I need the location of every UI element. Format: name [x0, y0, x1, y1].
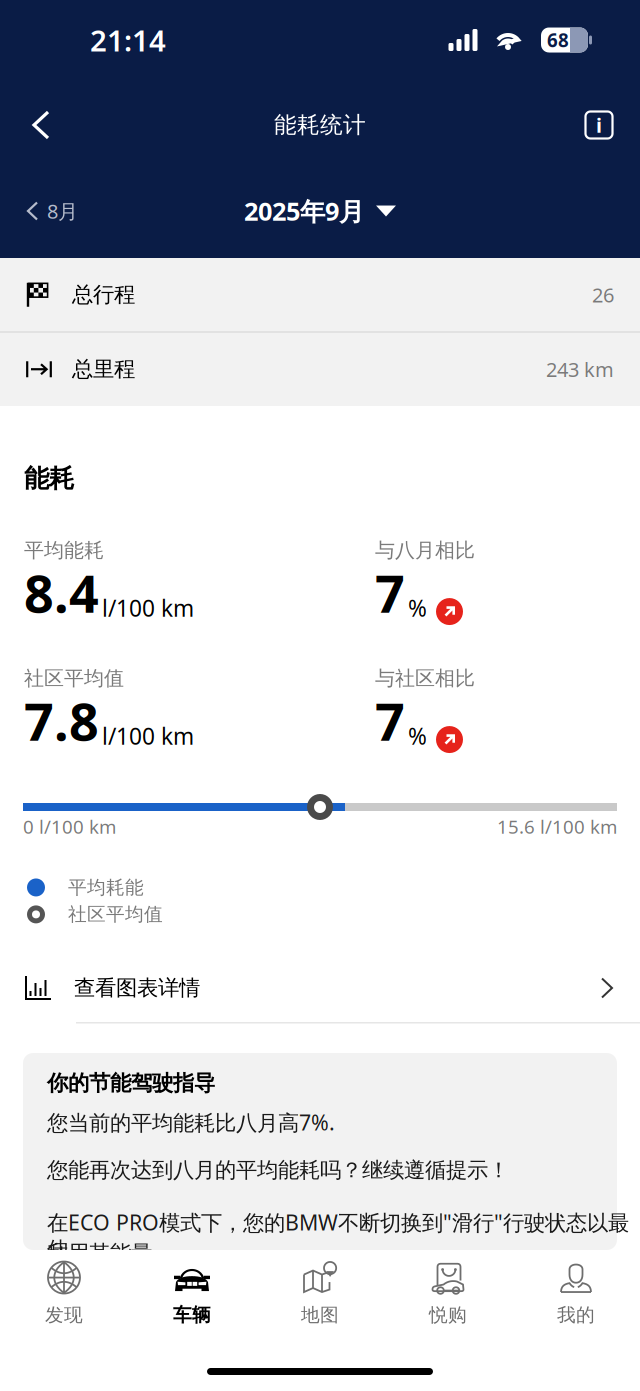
staticText: 你的节能驾驶指导 [47, 1070, 215, 1096]
staticText: 查看图表详情 [74, 975, 200, 1001]
button[interactable]: 查看图表详情 [0, 954, 640, 1023]
staticText: 7 [375, 686, 405, 755]
staticText: 与八月相比 [375, 538, 475, 563]
staticText: 能耗统计 [274, 111, 366, 139]
staticText: 2025年9月 [244, 194, 364, 228]
staticText: l/100 km [102, 721, 194, 751]
button[interactable]: 8月 [14, 186, 92, 236]
staticText: 地图 [301, 1303, 339, 1326]
staticText: 能耗 [24, 463, 74, 494]
staticText: 7.8 [24, 686, 99, 755]
staticText: 21:14 [90, 20, 166, 59]
staticText: 243 km [546, 356, 614, 383]
staticText: 发现 [45, 1303, 83, 1326]
staticText: i [596, 112, 602, 138]
staticText: % [408, 593, 427, 623]
staticText: 您能再次达到八月的平均能耗吗？继续遵循提示！ [47, 1157, 509, 1183]
staticText: 68 [547, 28, 569, 52]
staticText: 我的 [557, 1303, 595, 1326]
staticText: 社区平均值 [24, 666, 124, 691]
staticText: 车辆 [173, 1303, 211, 1326]
staticText: 社区平均值 [68, 903, 163, 926]
button[interactable]: 车辆 [128, 1250, 256, 1336]
button[interactable]: 地图 [256, 1250, 384, 1336]
staticText: 利用其能量 [47, 1240, 152, 1266]
staticText: l/100 km [102, 593, 194, 623]
staticText: 总里程 [72, 356, 135, 382]
button[interactable]: 悦购 [384, 1250, 512, 1336]
staticText: % [408, 721, 427, 751]
button[interactable]: Back [8, 96, 74, 154]
staticText: 平均能耗 [24, 538, 104, 563]
button[interactable]: 发现 [0, 1250, 128, 1336]
staticText: 在ECO PRO模式下，您的BMW不断切换到"滑行"行驶状态以最佳 [47, 1208, 629, 1262]
button[interactable]: Information [566, 96, 632, 154]
staticText: 15.6 l/100 km [497, 814, 617, 839]
staticText: 8月 [47, 198, 78, 224]
staticText: 总行程 [72, 282, 135, 308]
staticText: 0 l/100 km [23, 814, 116, 839]
staticText: 悦购 [429, 1303, 467, 1326]
staticText: 7 [375, 558, 405, 627]
staticText: 8.4 [24, 558, 99, 627]
staticText: 与社区相比 [375, 666, 475, 691]
staticText: 26 [592, 281, 614, 308]
staticText: 平均耗能 [68, 876, 144, 899]
staticText: 您当前的平均能耗比八月高7%. [47, 1108, 335, 1136]
button[interactable]: 我的 [512, 1250, 640, 1336]
